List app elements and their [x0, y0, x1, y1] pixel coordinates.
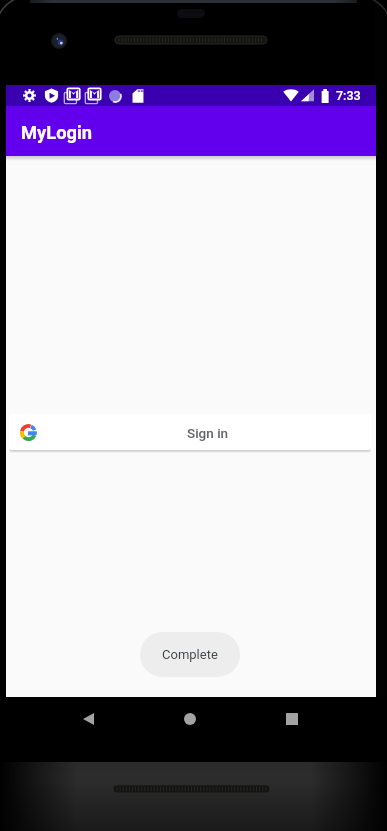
button[interactable]: Complete	[140, 632, 240, 677]
staticText: Complete	[162, 647, 218, 662]
button[interactable]: Sign in	[9, 414, 371, 450]
staticText: MyLogin	[21, 122, 93, 143]
button[interactable]: Back	[58, 697, 118, 741]
button[interactable]: Recent apps	[262, 697, 322, 741]
staticText: Sign in	[187, 425, 229, 441]
staticText: 7:33	[336, 88, 361, 103]
button[interactable]: Home	[160, 697, 220, 741]
